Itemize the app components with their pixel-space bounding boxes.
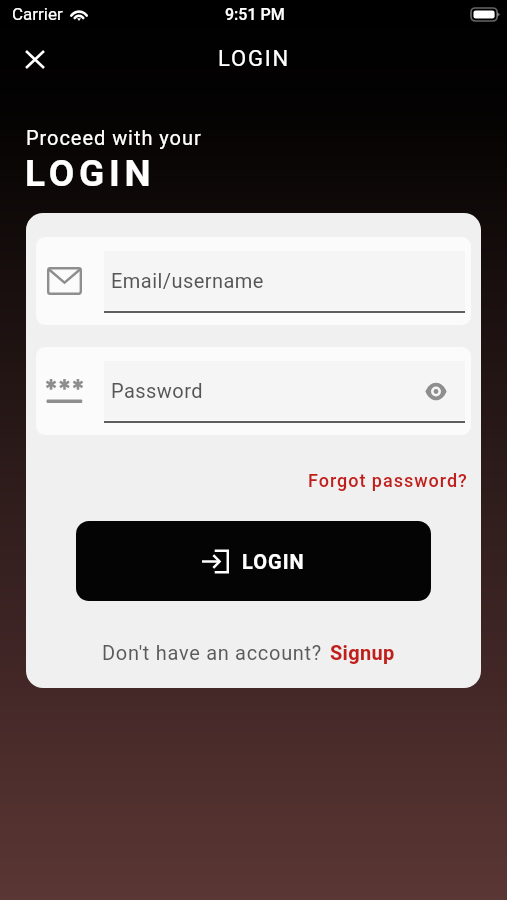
staticText: Don't have an account? [102,641,323,664]
button[interactable]: LOGIN [76,521,431,601]
staticText: LOGIN [25,152,156,195]
staticText: LOGIN [242,550,305,573]
staticText: Password [111,379,203,402]
staticText: Carrier [12,4,63,24]
button[interactable]: Show password [420,375,452,407]
button[interactable]: Password [36,347,471,435]
button[interactable]: Signup [330,641,395,664]
staticText: 9:51 PM [225,5,285,24]
staticText: Email/username [111,269,264,292]
staticText: LOGIN [218,46,290,72]
button[interactable]: Email/username [36,237,471,325]
button[interactable]: Forgot password? [308,470,481,491]
staticText: Proceed with your [26,126,202,149]
button[interactable]: Close [14,38,56,80]
